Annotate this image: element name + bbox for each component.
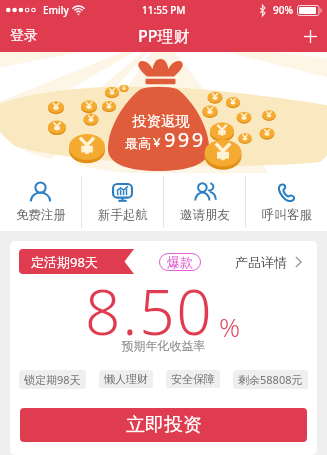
button[interactable]: 呼叫客服	[246, 173, 327, 231]
button[interactable]: 定活期98天	[19, 249, 134, 274]
button[interactable]: 登录	[0, 20, 48, 52]
button[interactable]: 新手起航	[82, 173, 163, 231]
staticText: 90%	[273, 3, 293, 17]
staticText: 最高	[125, 135, 151, 151]
staticText: Emily	[43, 3, 69, 17]
staticText: ¥	[153, 133, 161, 151]
button[interactable]: 邀请朋友	[164, 173, 245, 231]
staticText: PP理财	[138, 25, 190, 47]
button[interactable]: 爆款	[159, 253, 201, 271]
staticText: 11:55 PM	[142, 3, 186, 17]
staticText: 新手起航	[98, 207, 148, 223]
staticText: 投资返现	[132, 112, 190, 130]
staticText: 爆款	[167, 254, 193, 270]
staticText: 剩余58808元	[238, 372, 303, 387]
staticText: 免费注册	[16, 207, 66, 223]
staticText: 999	[164, 126, 206, 153]
staticText: 8.50	[85, 269, 214, 353]
staticText: 立即投资	[126, 413, 202, 437]
staticText: 邀请朋友	[180, 207, 230, 223]
button[interactable]: 产品详情	[235, 254, 302, 270]
button[interactable]: 免费注册	[0, 173, 81, 231]
staticText: 预期年化收益率	[10, 338, 317, 353]
staticText: 安全保障	[171, 372, 215, 386]
staticText: 呼叫客服	[262, 207, 312, 223]
staticText: 懒人理财	[104, 372, 148, 386]
staticText: 定活期98天	[31, 253, 98, 271]
button[interactable]: 立即投资	[20, 408, 307, 442]
staticText: %	[219, 309, 241, 344]
staticText: 锁定期98天	[24, 372, 81, 387]
staticText: 登录	[10, 27, 38, 45]
button[interactable]: Add	[294, 20, 327, 52]
staticText: 产品详情	[235, 254, 287, 270]
